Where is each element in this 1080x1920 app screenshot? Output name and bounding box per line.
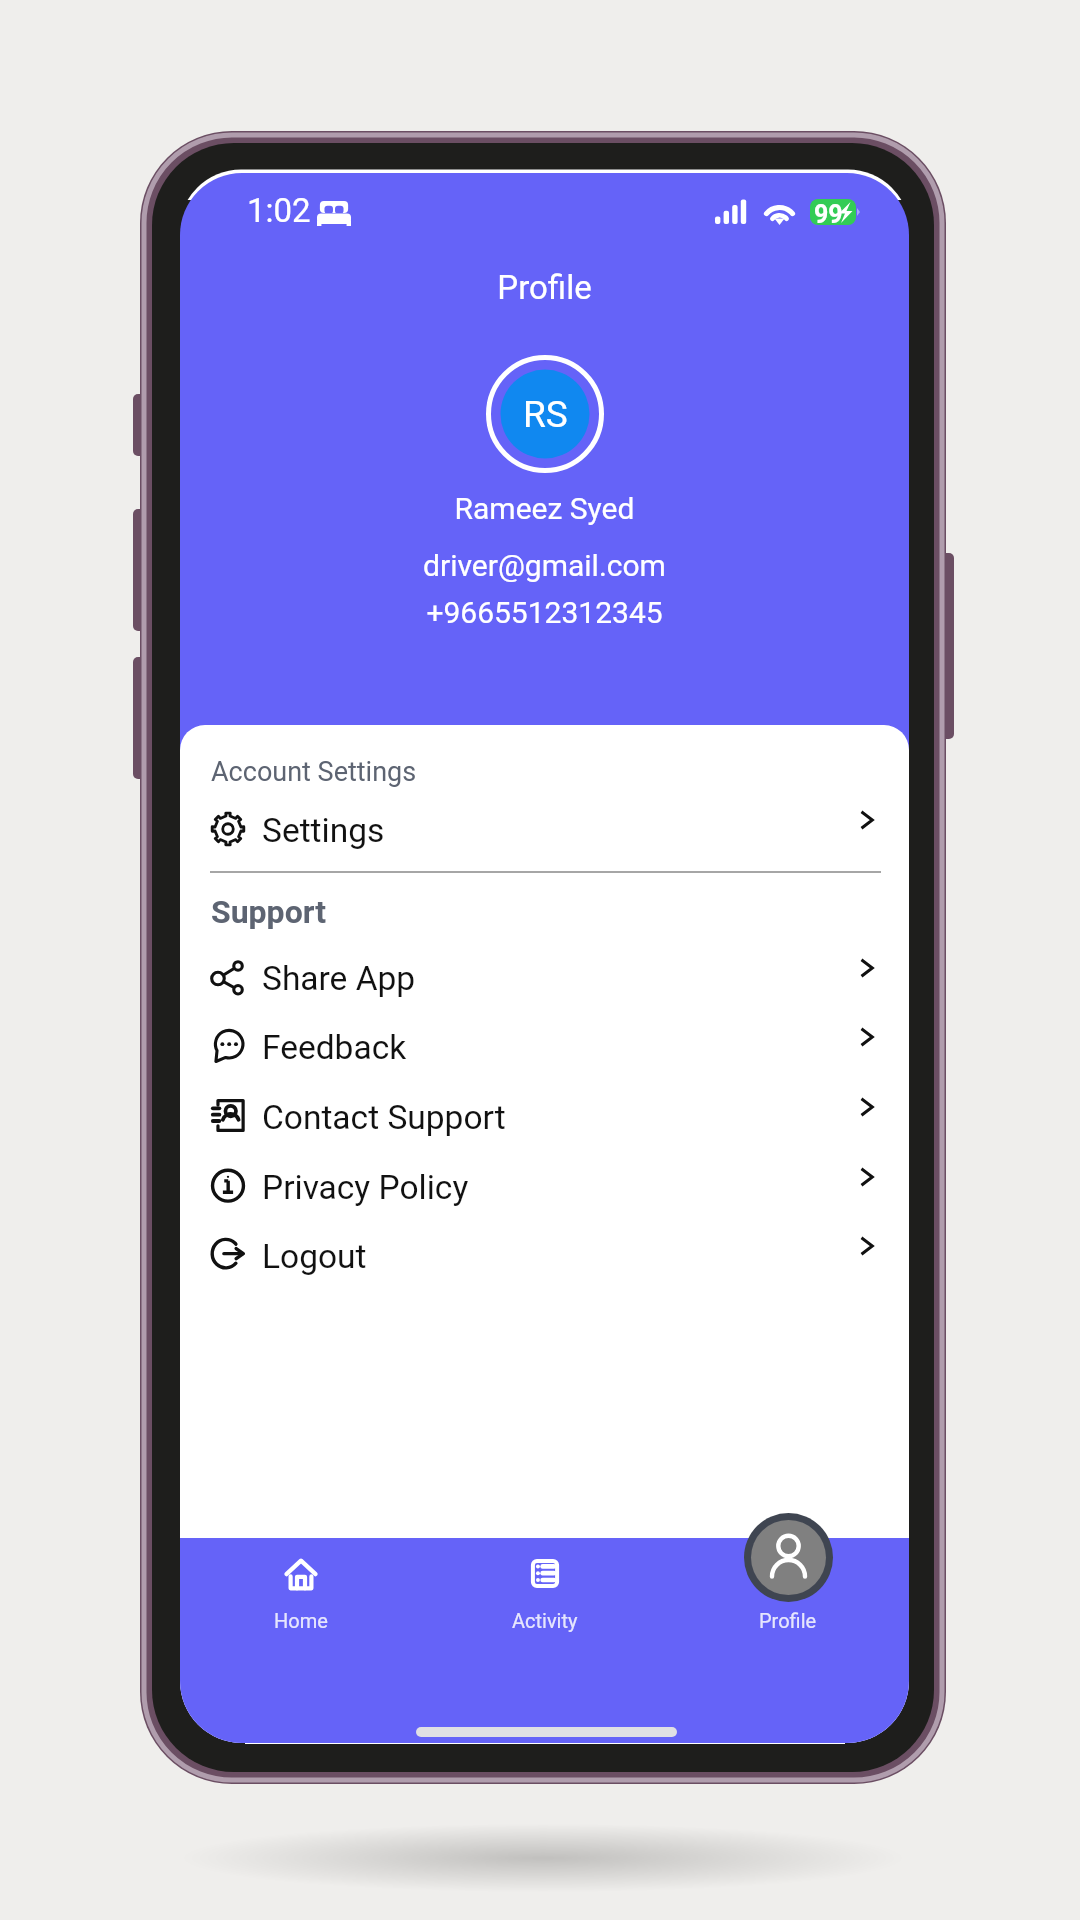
- button[interactable]: Share App: [180, 942, 909, 1012]
- staticText: Share App: [262, 959, 416, 998]
- staticText: Support: [211, 893, 326, 931]
- staticText: +9665512312345: [180, 595, 909, 630]
- staticText: driver@gmail.com: [180, 548, 909, 583]
- staticText: Rameez Syed: [180, 491, 909, 526]
- button[interactable]: Home: [211, 1538, 391, 1648]
- staticText: Contact Support: [262, 1098, 506, 1137]
- staticText: Account Settings: [211, 756, 417, 788]
- staticText: Activity: [512, 1609, 578, 1632]
- button[interactable]: Profile: [698, 1538, 878, 1627]
- staticText: Feedback: [262, 1028, 407, 1067]
- staticText: Home: [274, 1609, 328, 1632]
- staticText: Settings: [262, 811, 385, 850]
- staticText: Logout: [262, 1237, 367, 1276]
- staticText: 99: [814, 200, 843, 229]
- button[interactable]: Feedback: [180, 1011, 909, 1081]
- staticText: 1:02: [247, 191, 311, 230]
- button[interactable]: Logout: [180, 1220, 909, 1290]
- staticText: Profile: [180, 268, 909, 307]
- button[interactable]: Activity: [455, 1538, 635, 1648]
- button[interactable]: Contact Support: [180, 1081, 909, 1151]
- staticText: Profile: [759, 1609, 817, 1632]
- staticText: RS: [523, 393, 568, 436]
- button[interactable]: Settings: [180, 794, 909, 864]
- staticText: Privacy Policy: [262, 1168, 469, 1207]
- button[interactable]: Privacy Policy: [180, 1151, 909, 1221]
